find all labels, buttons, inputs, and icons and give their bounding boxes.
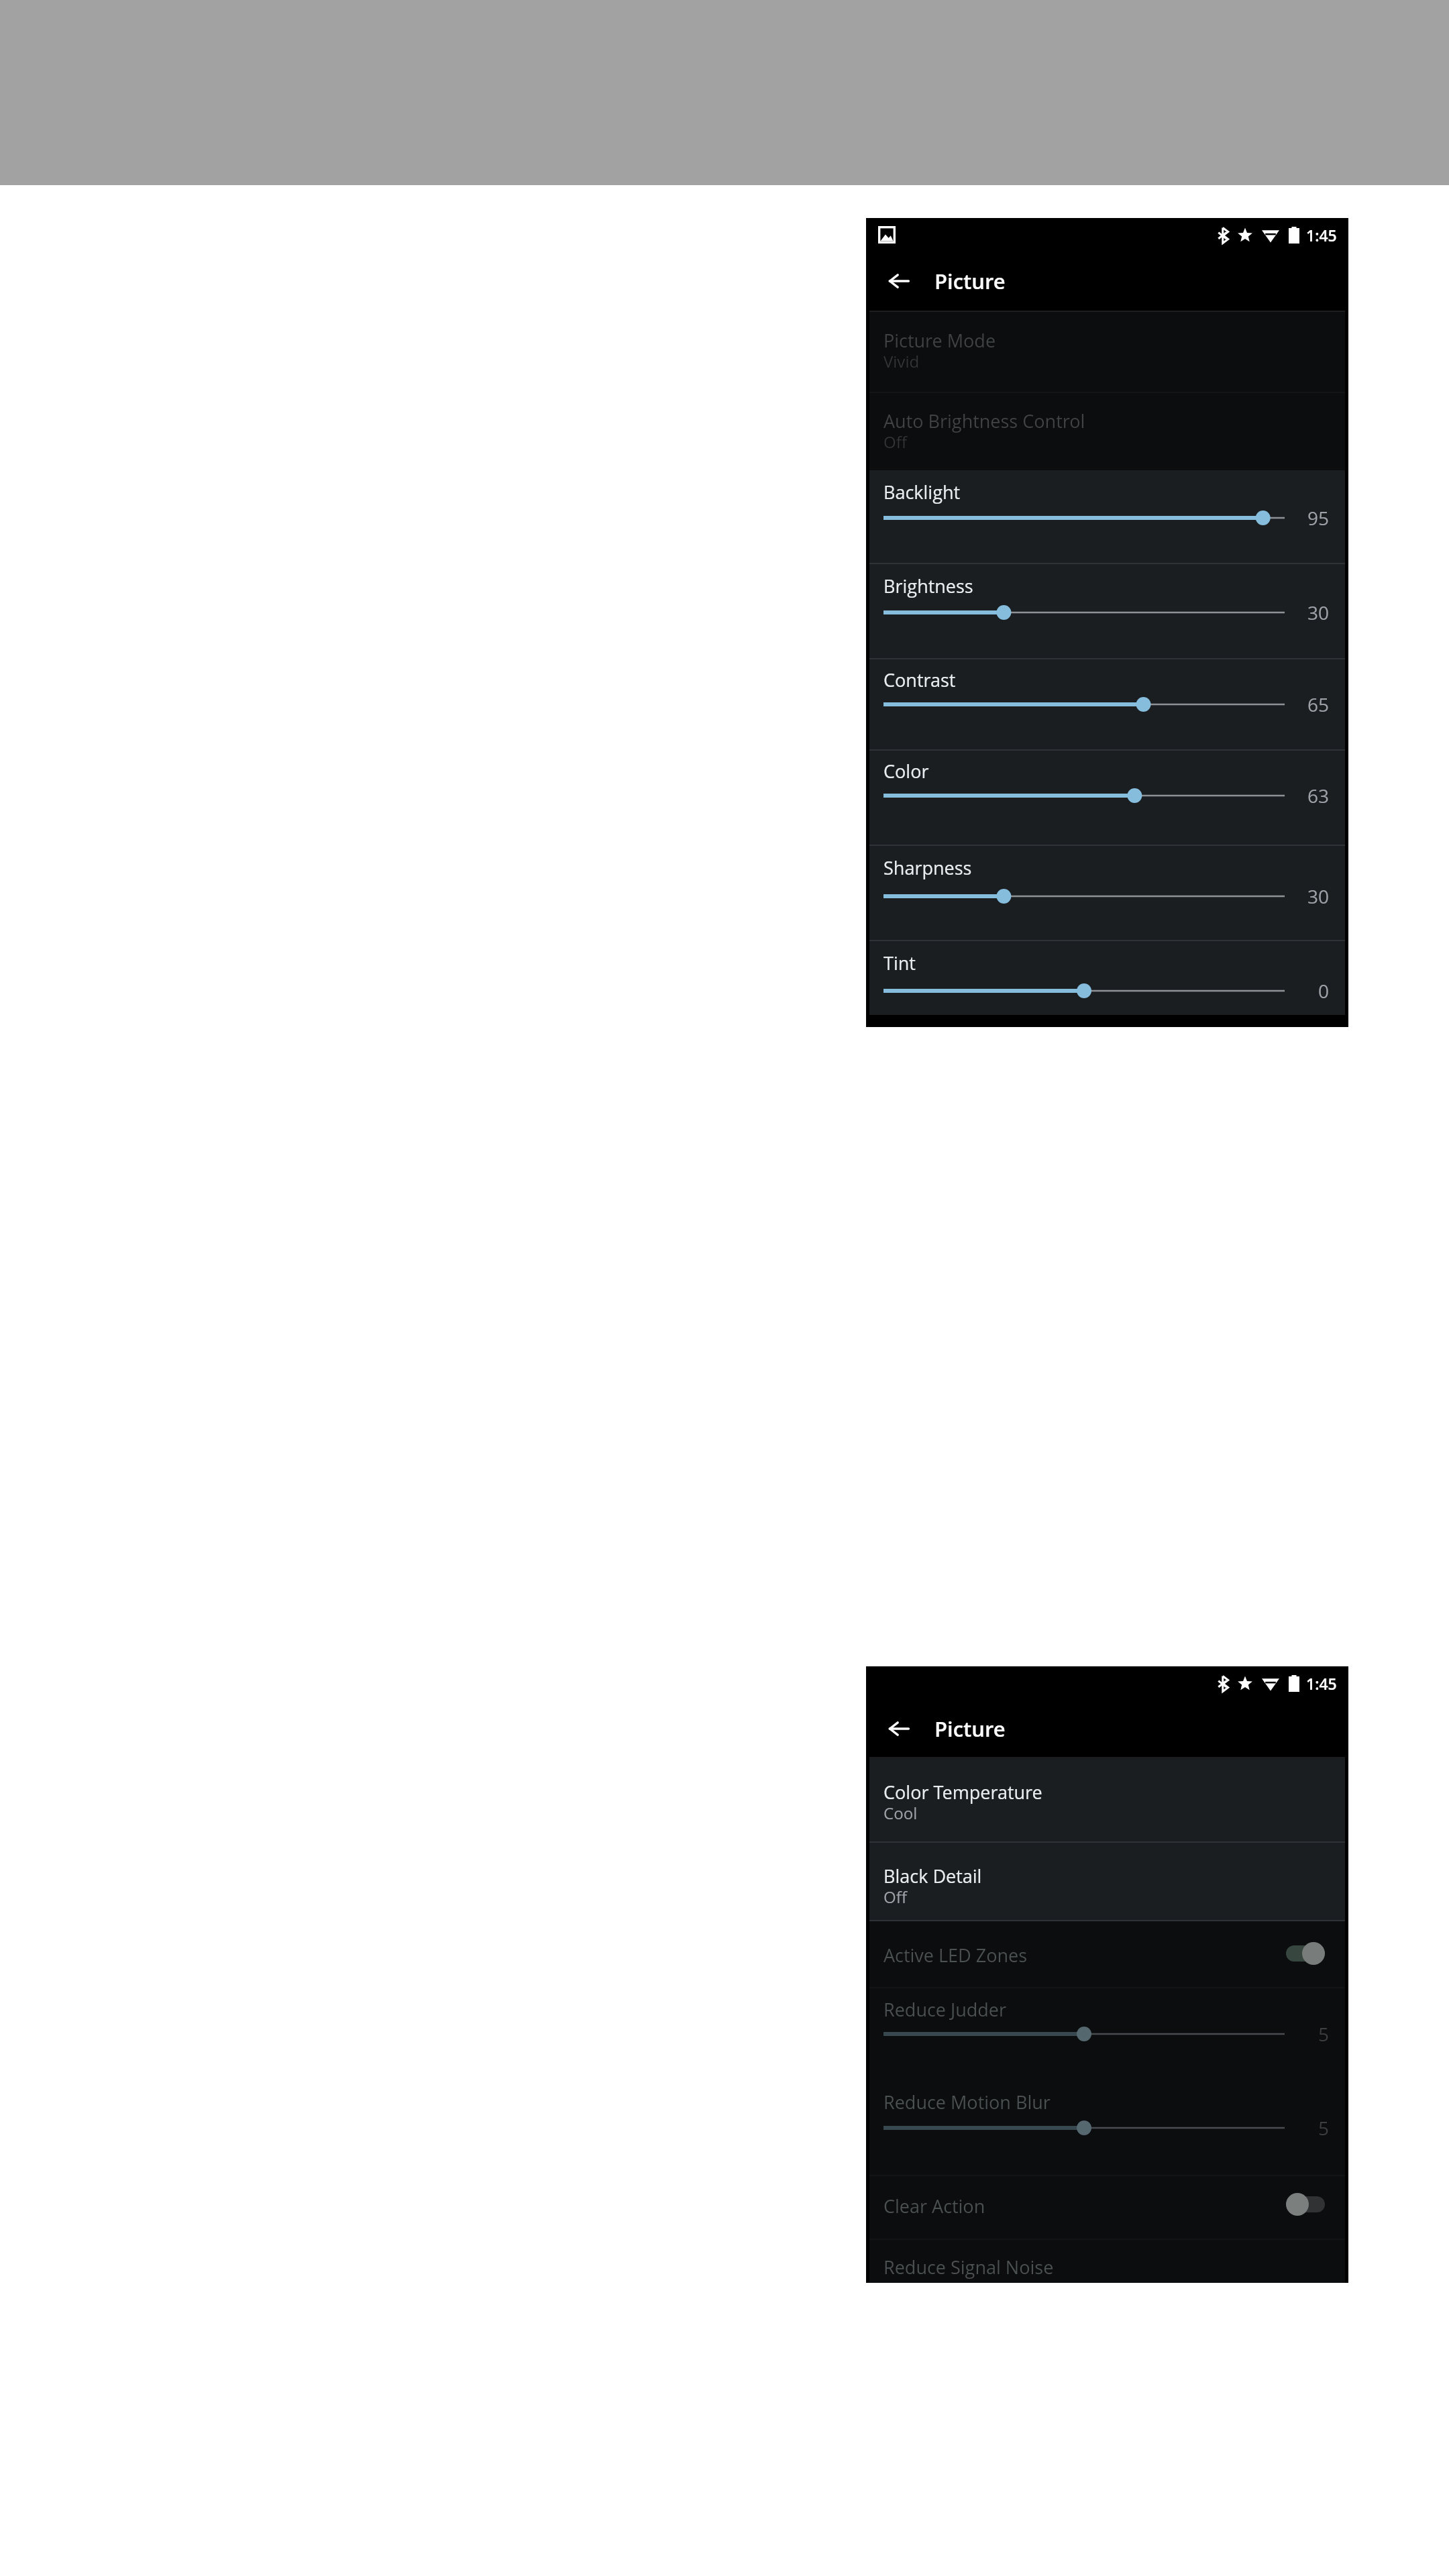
button[interactable]: Tint	[869, 941, 1345, 1015]
button[interactable]: Back	[889, 1700, 916, 1757]
staticText: Reduce Signal Noise	[883, 2255, 1054, 2279]
button[interactable]: Contrast	[869, 659, 1345, 749]
staticText: Backlight	[883, 480, 961, 504]
staticText: Auto Brightness Control	[883, 409, 1085, 433]
staticText: Color Temperature	[883, 1780, 1042, 1805]
button[interactable]: Back	[889, 252, 916, 311]
staticText: Reduce Judder	[883, 1997, 1007, 2022]
staticText: 0	[1318, 978, 1330, 1004]
staticText: Off	[883, 1886, 907, 1908]
button[interactable]: Auto Brightness Control	[869, 393, 1345, 470]
staticText: 5	[1318, 2115, 1330, 2141]
staticText: Tint	[883, 951, 916, 975]
button[interactable]: Backlight	[869, 470, 1345, 563]
staticText: Active LED Zones	[883, 1943, 1028, 1968]
button[interactable]: Clear Action	[869, 2176, 1345, 2239]
staticText: 30	[1307, 600, 1330, 625]
staticText: Picture	[934, 267, 1006, 295]
button[interactable]: Sharpness	[869, 846, 1345, 940]
staticText: Reduce Motion Blur	[883, 2090, 1051, 2114]
staticText: Vivid	[883, 350, 920, 372]
button[interactable]: Reduce Signal Noise	[869, 2240, 1345, 2283]
staticText: Brightness	[883, 574, 973, 598]
staticText: Picture Mode	[883, 328, 996, 353]
staticText: Off	[883, 431, 907, 453]
staticText: 30	[1307, 883, 1330, 909]
staticText: 5	[1318, 2021, 1330, 2047]
staticText: Black Detail	[883, 1864, 982, 1888]
button[interactable]: Brightness	[869, 564, 1345, 658]
button[interactable]: Reduce Motion Blur	[869, 2082, 1345, 2175]
staticText: Cool	[883, 1802, 918, 1824]
staticText: 1:45	[1306, 225, 1337, 246]
button[interactable]: Reduce Judder	[869, 1988, 1345, 2082]
button[interactable]: Picture Mode	[869, 312, 1345, 392]
button[interactable]: Active LED Zones	[869, 1921, 1345, 1987]
button[interactable]: Color Temperature	[869, 1757, 1345, 1841]
staticText: Clear Action	[883, 2194, 985, 2218]
button[interactable]: Color	[869, 751, 1345, 845]
button[interactable]: Back	[869, 252, 1345, 311]
staticText: Contrast	[883, 667, 956, 692]
staticText: 63	[1307, 783, 1330, 808]
staticText: Picture	[934, 1715, 1006, 1743]
button[interactable]: Back	[869, 1700, 1345, 1757]
staticText: Color	[883, 759, 929, 784]
button[interactable]: Black Detail	[869, 1843, 1345, 1920]
staticText: 65	[1307, 692, 1330, 717]
staticText: 95	[1307, 505, 1330, 531]
staticText: Sharpness	[883, 855, 972, 880]
staticText: 1:45	[1306, 1673, 1337, 1694]
